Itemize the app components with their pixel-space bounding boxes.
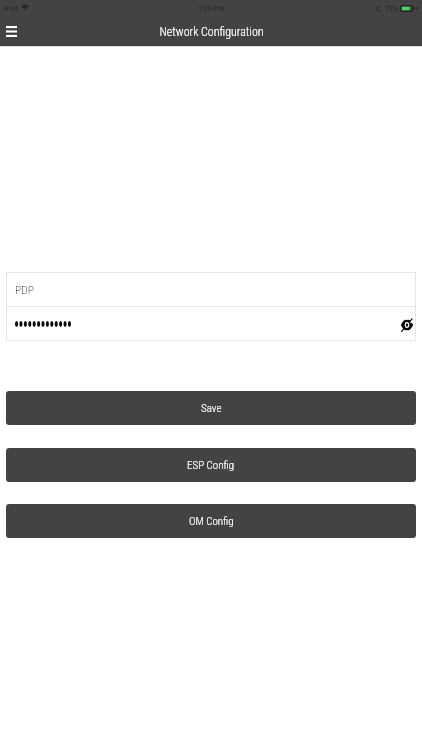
- staticText: ESP Config: [187, 459, 235, 472]
- staticText: 72%: [385, 4, 398, 13]
- staticText: Network Configuration: [159, 25, 264, 39]
- staticText: Save: [201, 402, 222, 415]
- button[interactable]: PDP: [6, 272, 416, 306]
- staticText: PDP: [15, 283, 34, 296]
- button[interactable]: ESP Config: [6, 448, 416, 482]
- staticText: OM Config: [189, 515, 234, 528]
- button[interactable]: Save: [6, 391, 416, 425]
- staticText: 1:09 PM: [198, 4, 225, 13]
- button[interactable]: Show password: [395, 313, 418, 336]
- button[interactable]: OM Config: [6, 504, 416, 538]
- button[interactable]: Open navigation menu: [0, 20, 23, 43]
- staticText: iPad: [4, 4, 19, 13]
- button[interactable]: Show password: [6, 307, 416, 341]
